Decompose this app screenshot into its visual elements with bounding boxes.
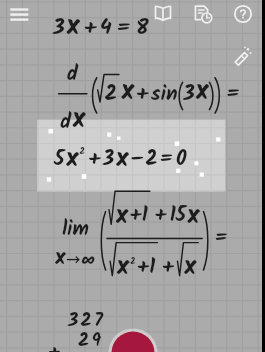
- button[interactable]: History: [192, 2, 214, 26]
- button[interactable]: Solve: [108, 328, 158, 352]
- button[interactable]: Magic wand: [232, 43, 254, 65]
- button[interactable]: Dictionary: [152, 2, 174, 26]
- button[interactable]: Menu: [6, 2, 32, 26]
- button[interactable]: Help: [232, 3, 254, 25]
